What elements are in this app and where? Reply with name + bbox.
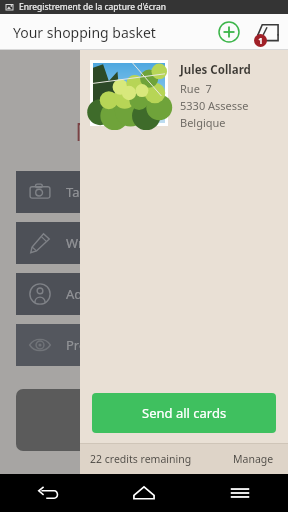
staticText: Manage <box>233 452 274 466</box>
button[interactable] <box>16 389 272 451</box>
button[interactable]: Preview card <box>16 324 272 366</box>
button[interactable]: Home <box>96 474 192 512</box>
staticText: Belgique <box>180 115 226 130</box>
staticText: Your shopping basket <box>13 23 156 42</box>
button[interactable]: Back <box>0 474 96 512</box>
button[interactable]: Take a photo <box>16 171 272 213</box>
button[interactable]: Add card <box>212 15 246 49</box>
button[interactable]: Inbox, 1 new <box>250 14 286 50</box>
button[interactable]: Send all cards <box>92 393 276 433</box>
button[interactable]: Recent apps <box>192 474 288 512</box>
staticText: 22 credits remaining <box>90 452 192 466</box>
staticText: 5330 Assesse <box>180 98 249 113</box>
staticText: Preview card <box>66 336 144 354</box>
staticText: Add addresses <box>66 285 156 303</box>
staticText: Take a photo <box>66 183 145 201</box>
button[interactable]: Add addresses <box>16 273 272 315</box>
staticText: Rue 7 <box>180 81 212 96</box>
button[interactable]: Manage <box>229 448 278 470</box>
staticText: Jules Collard <box>180 62 251 78</box>
staticText: MonCarnet <box>75 113 213 148</box>
staticText: Enregistrement de la capture d'écran <box>19 1 167 13</box>
staticText: Write a message <box>66 234 168 252</box>
button[interactable]: Write a message <box>16 222 272 264</box>
staticText: 1 <box>258 35 263 46</box>
staticText: Send all cards <box>142 404 227 422</box>
